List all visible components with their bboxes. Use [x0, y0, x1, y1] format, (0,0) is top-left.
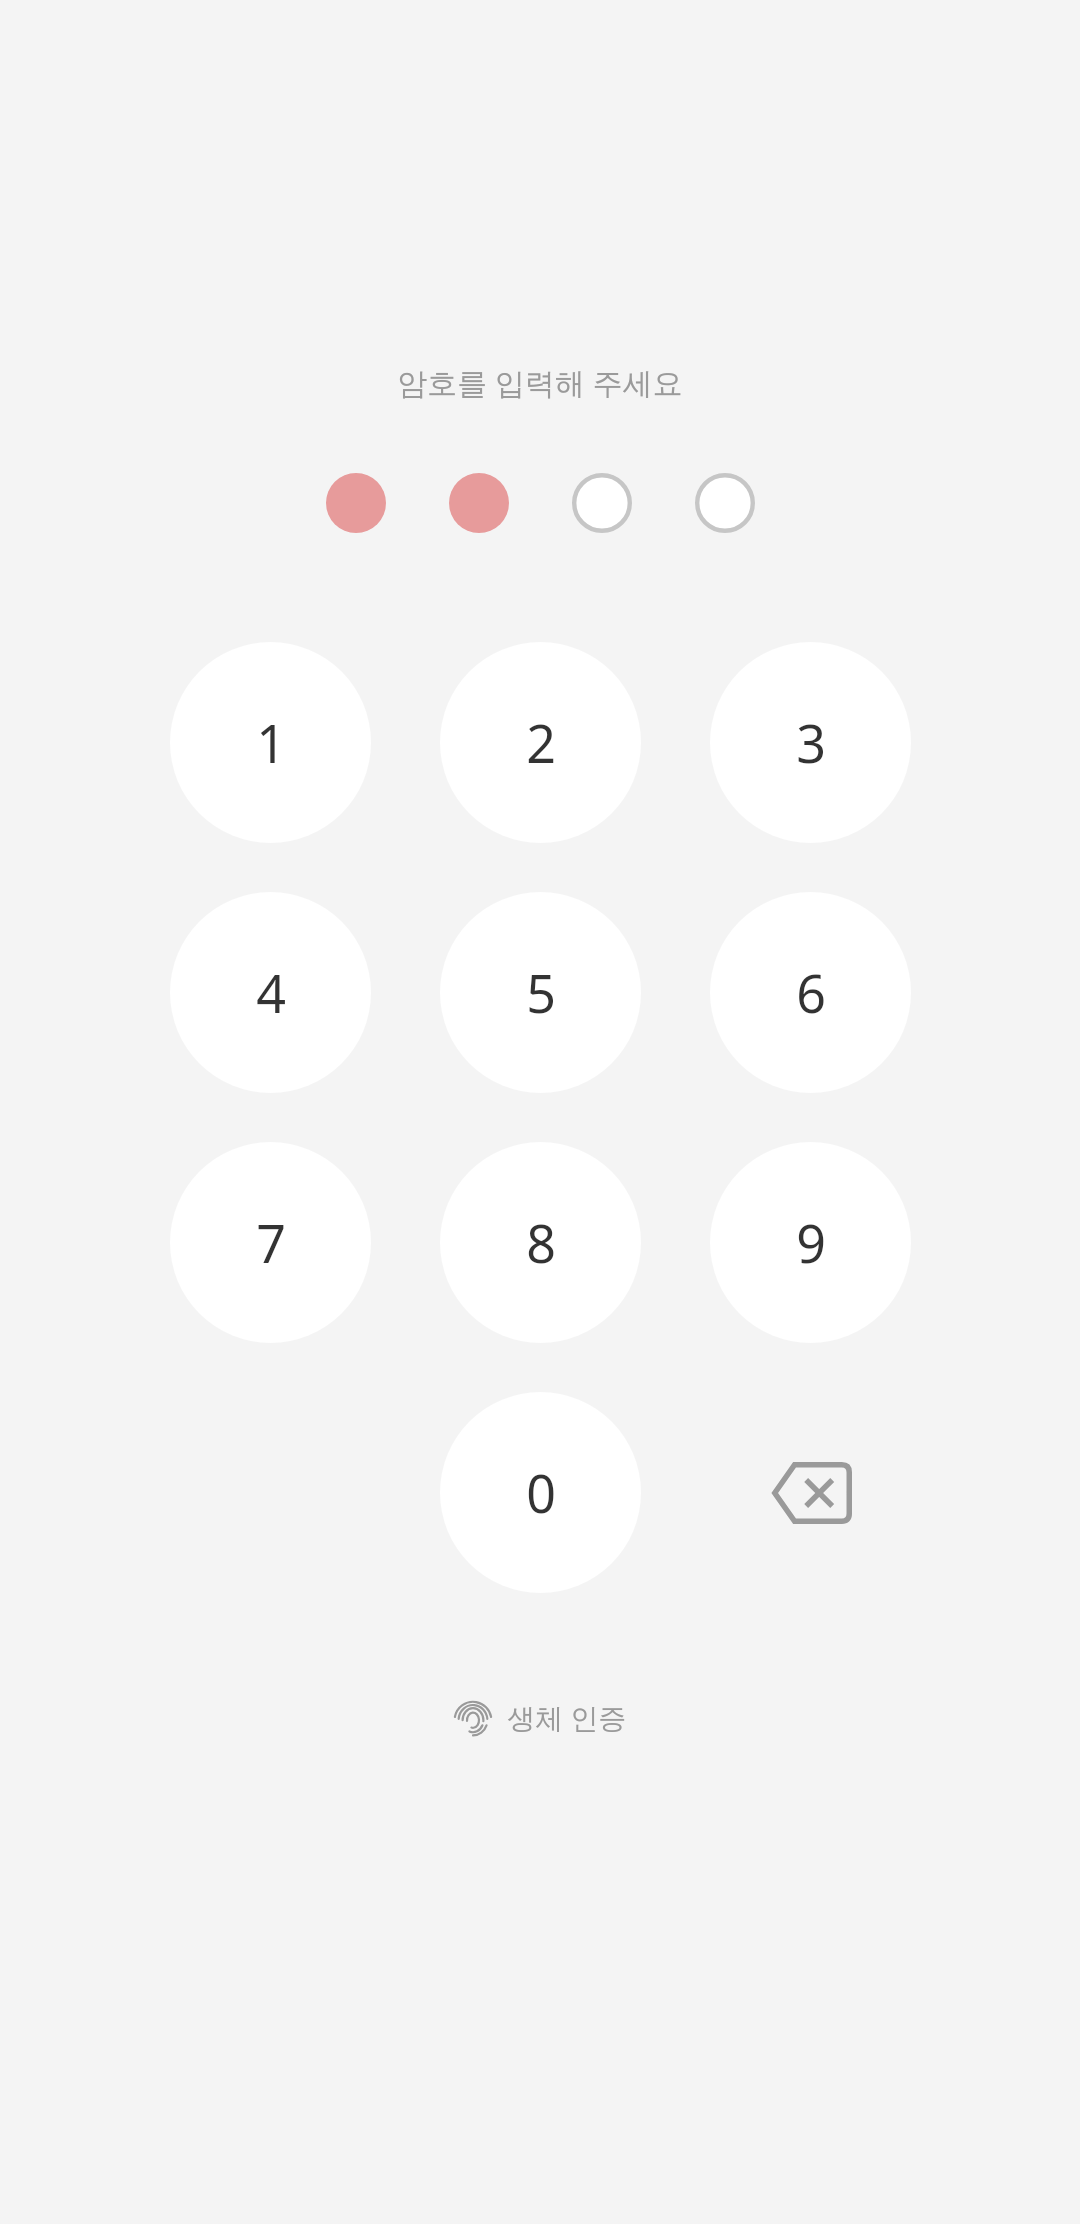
- staticText: 0: [526, 1457, 556, 1528]
- button[interactable]: 생체 인증: [433, 1685, 647, 1749]
- button[interactable]: 7: [170, 1142, 371, 1343]
- staticText: 2: [526, 707, 556, 778]
- button[interactable]: 0: [440, 1392, 641, 1593]
- staticText: 4: [256, 957, 286, 1028]
- staticText: 생체 인증: [507, 1698, 627, 1736]
- staticText: 6: [796, 957, 826, 1028]
- staticText: 5: [526, 957, 556, 1028]
- staticText: 3: [796, 707, 826, 778]
- button[interactable]: 9: [710, 1142, 911, 1343]
- staticText: 1: [256, 707, 286, 778]
- button[interactable]: 5: [440, 892, 641, 1093]
- staticText: 암호를 입력해 주세요: [397, 362, 683, 403]
- staticText: 8: [526, 1207, 556, 1278]
- button[interactable]: 4: [170, 892, 371, 1093]
- button[interactable]: Backspace: [710, 1392, 911, 1593]
- button[interactable]: 8: [440, 1142, 641, 1343]
- staticText: 9: [796, 1207, 826, 1278]
- button[interactable]: 1: [170, 642, 371, 843]
- button[interactable]: 3: [710, 642, 911, 843]
- button[interactable]: 2: [440, 642, 641, 843]
- staticText: 7: [256, 1207, 286, 1278]
- button[interactable]: 6: [710, 892, 911, 1093]
